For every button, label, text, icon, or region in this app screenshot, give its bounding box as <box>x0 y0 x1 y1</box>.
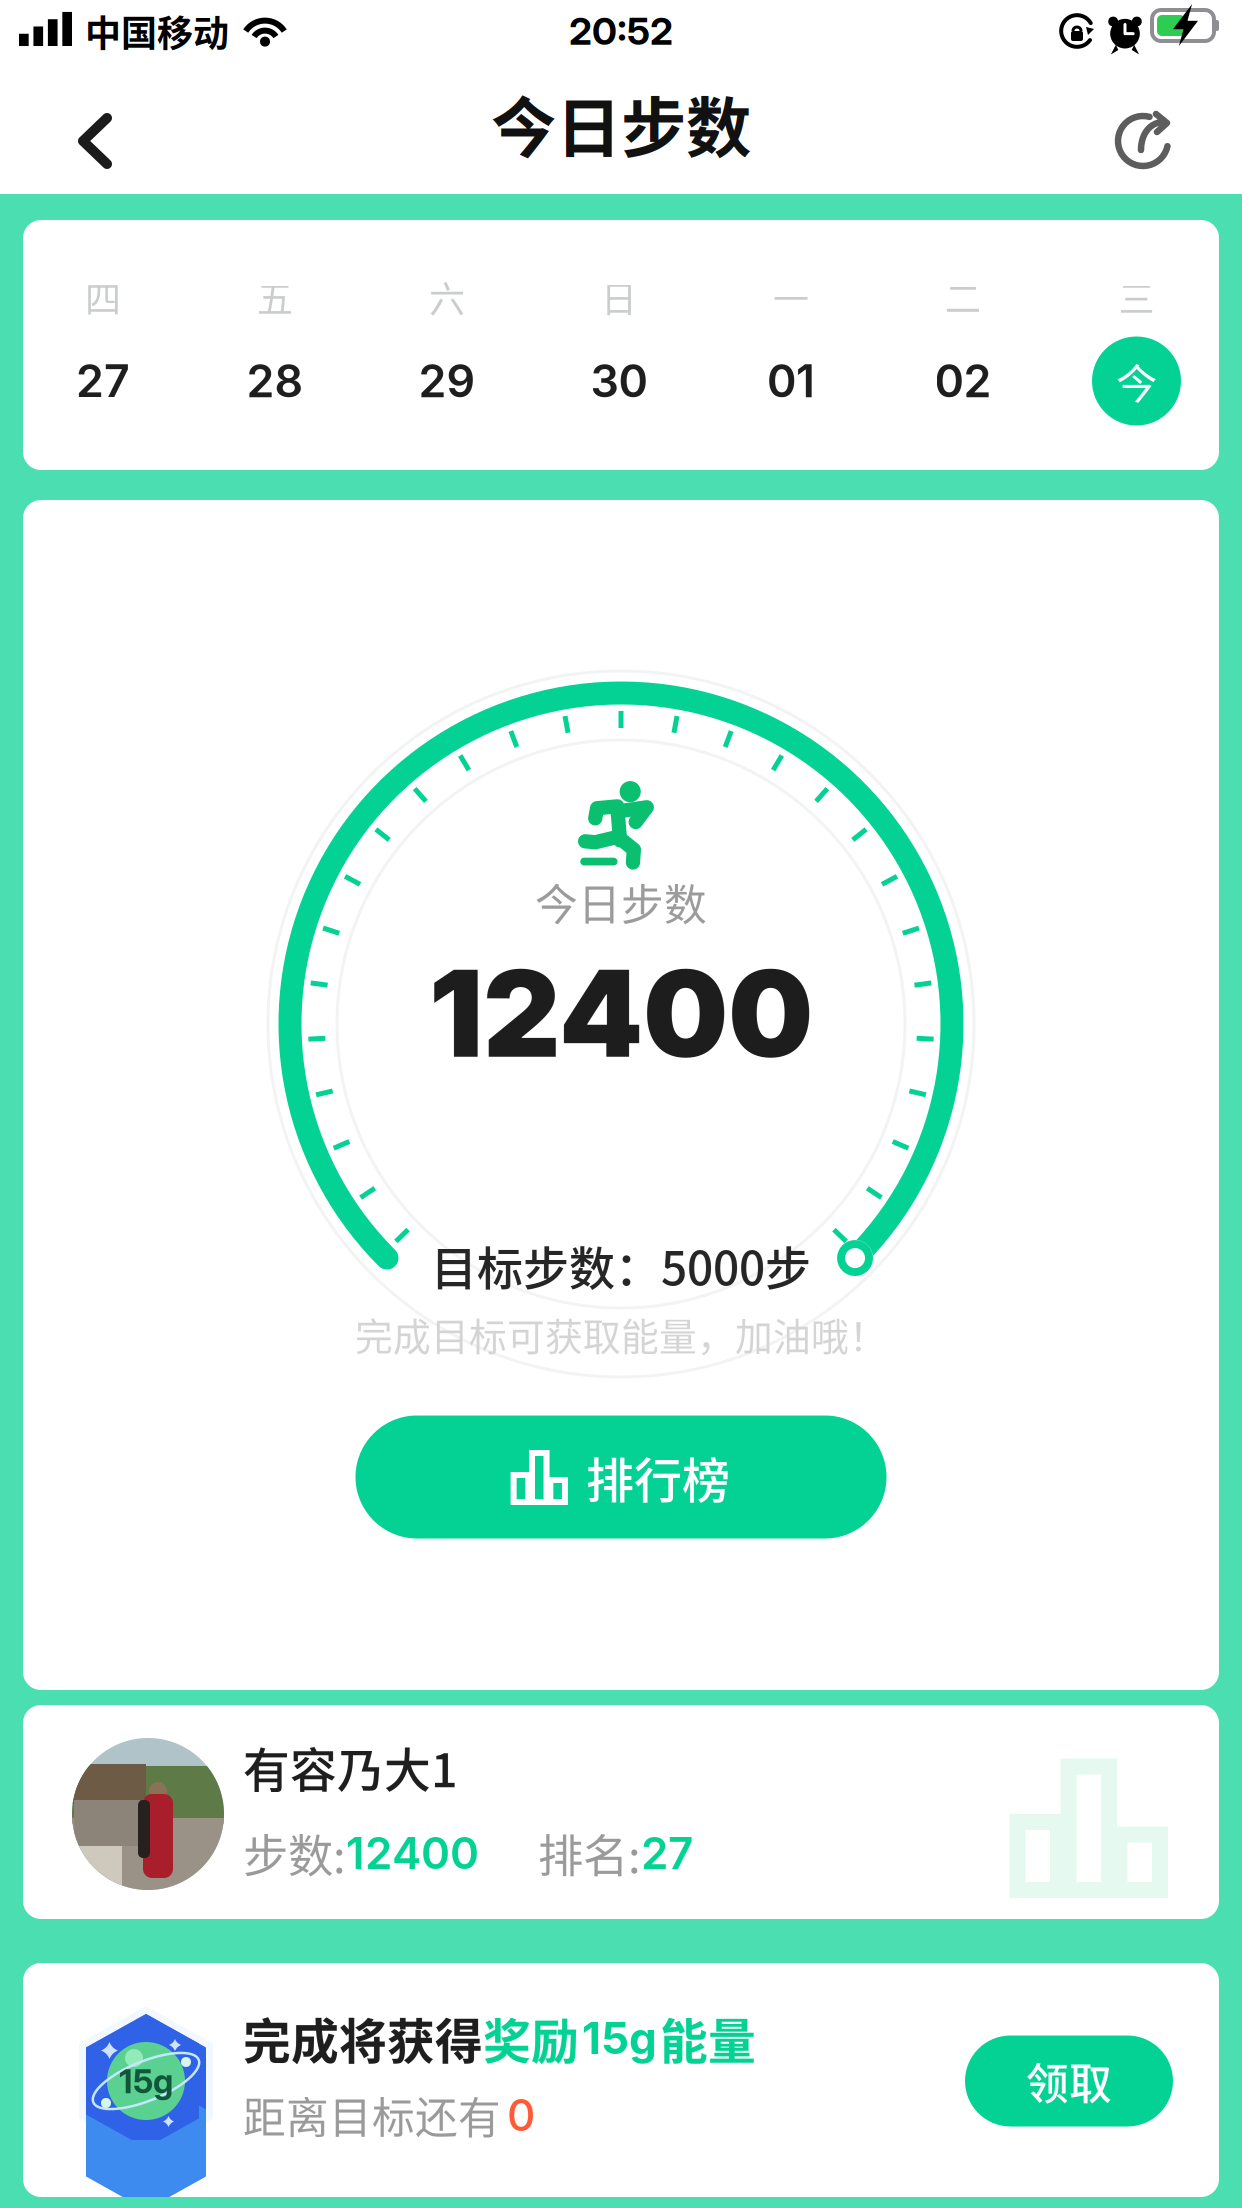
button[interactable]: Back <box>40 88 150 194</box>
staticText: 02 <box>934 354 991 408</box>
staticText: 六 <box>429 271 465 323</box>
staticText: 二 <box>945 271 981 323</box>
button[interactable]: 日 <box>539 220 699 470</box>
staticText: 27 <box>641 1826 693 1880</box>
staticText: 今日步数 <box>491 76 751 170</box>
staticText: 排行榜 <box>586 1442 730 1512</box>
button[interactable]: 二 <box>883 220 1043 470</box>
staticText: 日 <box>601 271 637 323</box>
button[interactable]: 领取 <box>965 2035 1173 2126</box>
staticText: 排名: <box>538 1820 641 1886</box>
staticText: 完成将获得 <box>243 2003 483 2072</box>
staticText: 目标步数：5000步 <box>431 1232 811 1298</box>
staticText: 能量 <box>660 2003 756 2072</box>
staticText: 0 <box>507 2088 535 2142</box>
staticText: 15g <box>119 2061 173 2101</box>
staticText: 一 <box>773 271 809 323</box>
staticText: 27 <box>76 354 130 408</box>
staticText: 29 <box>418 354 475 408</box>
staticText: 01 <box>767 354 815 408</box>
staticText: 今日步数 <box>535 871 707 933</box>
button[interactable]: 有容乃大1 <box>23 1705 1219 1919</box>
staticText: 15g <box>582 2011 657 2065</box>
staticText: 领取 <box>1026 2050 1112 2112</box>
staticText: 三 <box>1118 271 1154 323</box>
button[interactable]: 五 <box>195 220 355 470</box>
staticText: 20:52 <box>569 8 673 54</box>
staticText: 有容乃大1 <box>243 1733 458 1801</box>
staticText: 四 <box>85 271 121 323</box>
staticText: 完成目标可获取能量，加油哦！ <box>355 1307 887 1361</box>
button[interactable]: 一 <box>711 220 871 470</box>
button[interactable]: 排行榜 <box>355 1415 886 1538</box>
staticText: 五 <box>257 271 293 323</box>
staticText: 30 <box>590 354 647 408</box>
button[interactable]: 四 <box>23 220 183 470</box>
staticText: 12400 <box>346 1826 479 1880</box>
button[interactable]: Share <box>1091 88 1201 194</box>
staticText: 12400 <box>429 940 813 1086</box>
staticText: 步数: <box>243 1820 346 1886</box>
button[interactable]: 六 <box>367 220 527 470</box>
staticText: 28 <box>246 354 303 408</box>
staticText: 今 <box>1116 351 1157 411</box>
staticText: 距离目标还有 <box>243 2084 501 2146</box>
staticText: 奖励 <box>483 2003 579 2072</box>
button[interactable]: 三 <box>1056 220 1216 470</box>
staticText: 中国移动 <box>85 5 229 57</box>
